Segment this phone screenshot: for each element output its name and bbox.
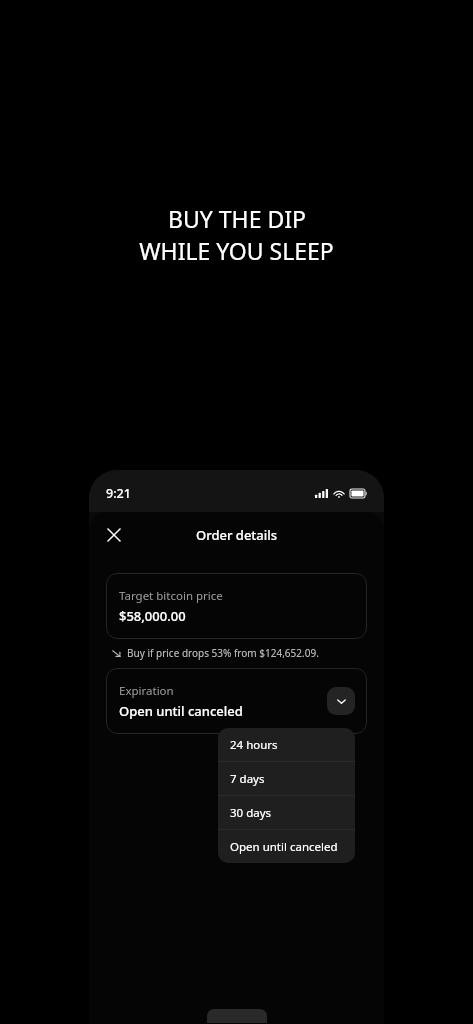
staticText: $58,000.00 <box>119 607 186 625</box>
staticText: Buy if price drops 53% from $124,652.09. <box>127 646 319 660</box>
button[interactable]: 24 hours <box>218 728 355 761</box>
staticText: BUY THE DIP <box>168 203 306 234</box>
staticText: Open until canceled <box>119 702 243 720</box>
button[interactable]: 30 days <box>218 796 355 829</box>
staticText: 9:21 <box>106 485 131 502</box>
staticText: Expiration <box>119 683 174 699</box>
button[interactable]: Target bitcoin price <box>106 573 367 639</box>
staticText: 30 days <box>230 805 272 821</box>
button[interactable]: Close <box>98 519 130 551</box>
staticText: Target bitcoin price <box>119 588 223 604</box>
staticText: Open until canceled <box>230 839 338 855</box>
staticText: WHILE YOU SLEEP <box>139 235 334 266</box>
button[interactable]: Open until canceled <box>218 830 355 863</box>
staticText: 7 days <box>230 771 265 787</box>
staticText: Order details <box>196 526 278 544</box>
staticText: 24 hours <box>230 737 278 753</box>
button[interactable]: Expand expiration options <box>327 687 355 715</box>
button[interactable]: Expiration <box>106 668 367 734</box>
button[interactable]: 7 days <box>218 762 355 795</box>
